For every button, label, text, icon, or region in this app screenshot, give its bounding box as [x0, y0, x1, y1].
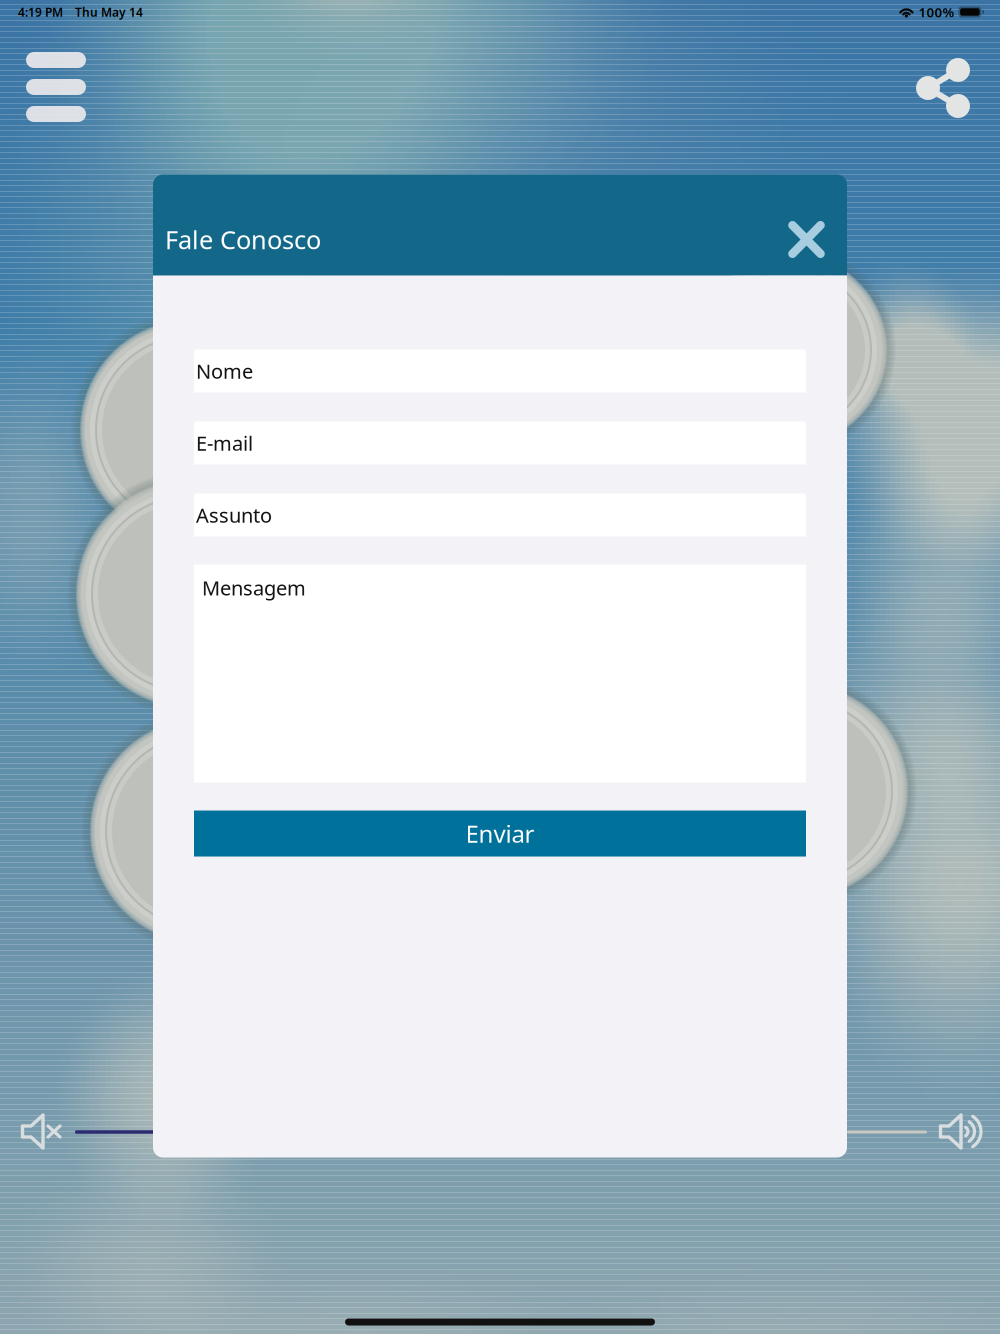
staticText: 4:19 PM [18, 4, 63, 20]
staticText: Mensagem [202, 574, 306, 601]
staticText: Thu May 14 [75, 4, 143, 20]
button[interactable]: Volume up [938, 1113, 980, 1151]
staticText: 100% [918, 3, 954, 21]
button[interactable]: Mute [20, 1113, 62, 1151]
button[interactable]: Close [788, 221, 825, 258]
staticText: Fale Conosco [165, 223, 321, 256]
button[interactable]: Menu [26, 52, 86, 122]
button[interactable]: Share [912, 52, 974, 124]
staticText: Assunto [196, 502, 272, 528]
staticText: Enviar [465, 818, 534, 849]
staticText: Nome [196, 358, 253, 384]
button[interactable]: Enviar [194, 810, 806, 856]
staticText: E-mail [196, 430, 253, 456]
